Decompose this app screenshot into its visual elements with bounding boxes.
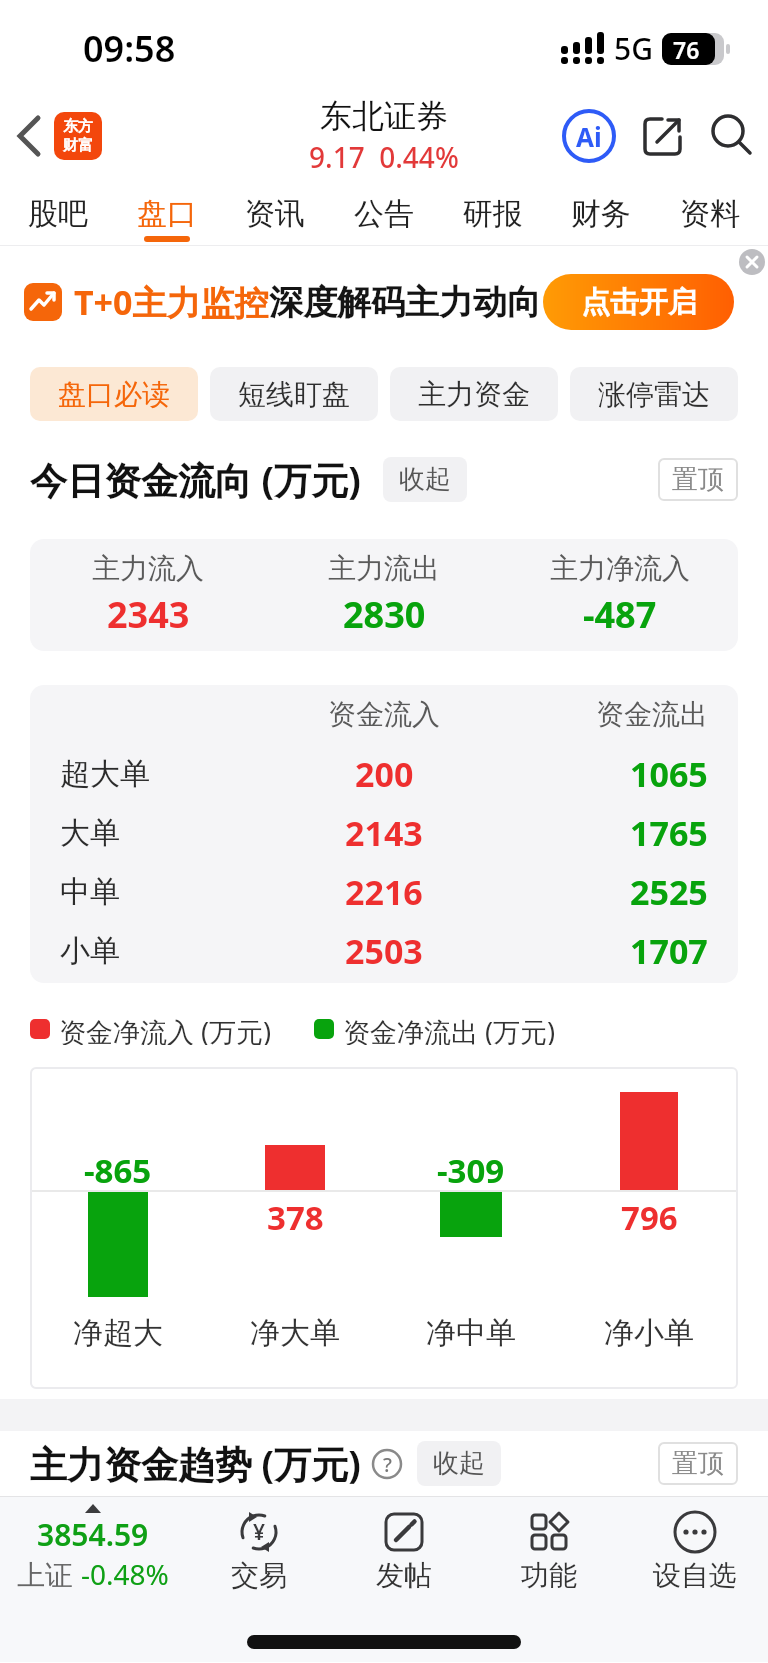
staticText: -865	[84, 1148, 152, 1192]
staticText: 资讯	[245, 195, 305, 233]
staticText: -0.48%	[81, 1555, 169, 1593]
staticText: 主力资金趋势 (万元)	[30, 1438, 361, 1489]
staticText: 上证	[17, 1555, 81, 1593]
button[interactable]: 功能	[476, 1504, 622, 1593]
staticText: 点击开启	[581, 284, 697, 321]
button[interactable]: 3854.59	[0, 1504, 186, 1593]
staticText: 76	[673, 34, 700, 65]
staticText: 3854.59	[37, 1514, 149, 1555]
button[interactable]: 研报	[463, 182, 523, 245]
staticText: 中单	[60, 873, 120, 911]
staticText: 发帖	[376, 1558, 432, 1593]
staticText: 2143	[345, 810, 423, 856]
button[interactable]: 收起	[417, 1441, 501, 1486]
staticText: 东方	[63, 117, 93, 136]
staticText: ¥	[253, 1518, 266, 1547]
staticText: 功能	[521, 1558, 577, 1593]
button[interactable]: 资讯	[245, 182, 305, 245]
button[interactable]: 财务	[571, 182, 631, 245]
staticText: T+0主力监控	[74, 279, 269, 325]
staticText: 1707	[630, 928, 708, 974]
staticText: 公告	[354, 195, 414, 233]
staticText: 短线盯盘	[238, 377, 350, 412]
staticText: 2525	[630, 869, 708, 915]
staticText: 大单	[60, 814, 120, 852]
staticText: 盘口必读	[58, 377, 170, 412]
button[interactable]: 盘口	[137, 182, 197, 245]
staticText: 置顶	[672, 1447, 724, 1480]
button[interactable]: 涨停雷达	[570, 367, 738, 421]
button[interactable]	[10, 116, 50, 156]
staticText: 资金流入	[328, 697, 440, 732]
staticText: -309	[437, 1148, 505, 1192]
staticText: 1765	[630, 810, 708, 856]
staticText: 财务	[571, 195, 631, 233]
button[interactable]	[738, 248, 766, 276]
staticText: 资料	[680, 195, 740, 233]
staticText: 净超大	[73, 1314, 163, 1352]
button[interactable]: 发帖	[331, 1504, 476, 1593]
staticText: 主力净流入	[550, 551, 690, 586]
staticText: 股吧	[28, 195, 88, 233]
staticText: 2216	[345, 869, 423, 915]
staticText: 东北证券	[320, 96, 448, 136]
staticText: 财富	[63, 136, 93, 155]
staticText: 净中单	[426, 1314, 516, 1352]
button[interactable]: 点击开启	[543, 274, 734, 330]
staticText: 5G	[614, 28, 653, 69]
staticText: 交易	[231, 1558, 287, 1593]
staticText: 净小单	[604, 1314, 694, 1352]
button[interactable]: 盘口必读	[30, 367, 198, 421]
staticText: 2343	[107, 590, 190, 639]
staticText: 2830	[343, 590, 426, 639]
staticText: 378	[267, 1195, 324, 1239]
staticText: 资金流出	[596, 697, 708, 732]
button[interactable]	[710, 114, 754, 158]
staticText: 小单	[60, 932, 120, 970]
button[interactable]: 置顶	[658, 458, 738, 501]
button[interactable]: 短线盯盘	[210, 367, 378, 421]
button[interactable]: 收起	[383, 457, 467, 502]
staticText: 涨停雷达	[598, 377, 710, 412]
staticText: Ai	[576, 119, 602, 154]
button[interactable]: 东方	[54, 112, 102, 160]
staticText: 今日资金流向 (万元)	[30, 454, 361, 505]
staticText: 置顶	[672, 463, 724, 496]
staticText: 收起	[399, 463, 451, 496]
staticText: 1065	[630, 751, 708, 797]
staticText: 796	[621, 1195, 678, 1239]
staticText: -487	[583, 590, 657, 639]
staticText: 主力流入	[92, 551, 204, 586]
staticText: 研报	[463, 195, 523, 233]
staticText: 超大单	[60, 755, 150, 793]
button[interactable]	[642, 115, 684, 157]
staticText: 资金净流入 (万元)	[59, 1013, 272, 1045]
staticText: 200	[355, 751, 414, 797]
button[interactable]: 置顶	[658, 1442, 738, 1485]
staticText: 净大单	[250, 1314, 340, 1352]
staticText: 盘口	[137, 195, 197, 233]
button[interactable]: 股吧	[28, 182, 88, 245]
staticText: 09:58	[83, 24, 176, 73]
staticText: ?	[383, 1451, 392, 1478]
staticText: 资金净流出 (万元)	[343, 1013, 556, 1045]
staticText: 主力资金	[418, 377, 530, 412]
button[interactable]: 资料	[680, 182, 740, 245]
staticText: 主力流出	[328, 551, 440, 586]
staticText: 9.17 0.44%	[309, 138, 459, 176]
button[interactable]: T+0主力监控	[0, 246, 768, 357]
staticText: 2503	[345, 928, 423, 974]
button[interactable]: ¥	[186, 1504, 331, 1593]
button[interactable]: 设自选	[622, 1504, 768, 1593]
staticText: 收起	[433, 1447, 485, 1480]
staticText: 深度解码主力动向	[269, 281, 541, 324]
button[interactable]: Ai	[562, 109, 616, 163]
button[interactable]: 公告	[354, 182, 414, 245]
staticText: 设自选	[653, 1558, 737, 1593]
button[interactable]: 主力资金	[390, 367, 558, 421]
